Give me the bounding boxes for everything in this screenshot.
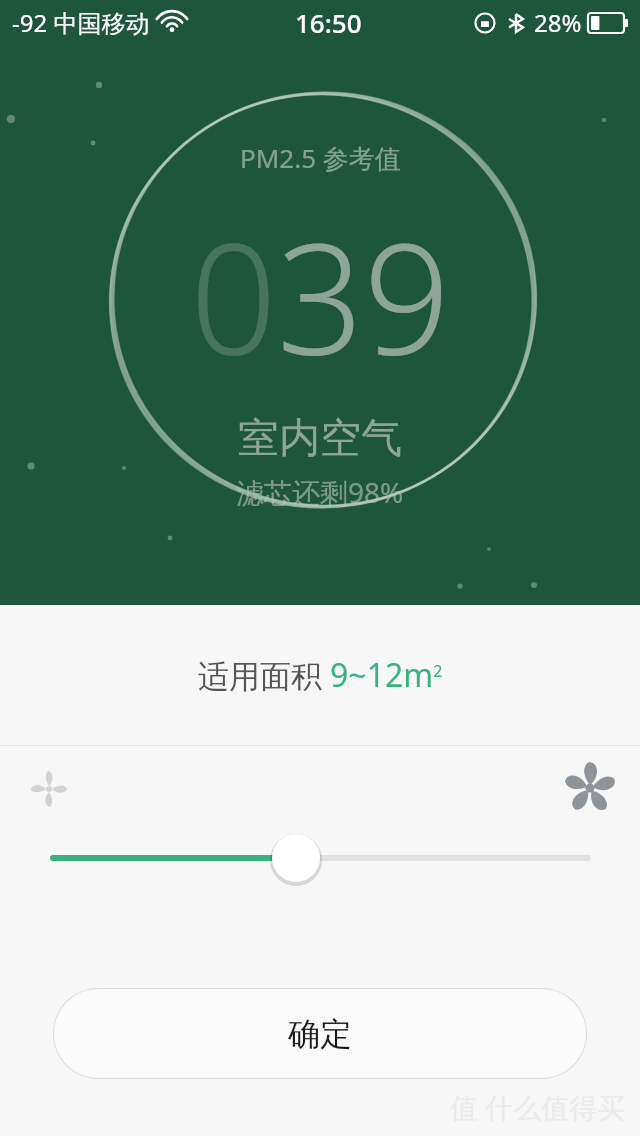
staticText: 室内空气	[238, 413, 402, 465]
staticText: 确定	[288, 1014, 352, 1054]
button[interactable]: High fan speed	[560, 758, 620, 818]
staticText: 适用面积 9~12m2	[198, 653, 443, 697]
button[interactable]: 适用面积 9~12m2	[0, 605, 640, 745]
staticText: PM2.5 参考值	[240, 140, 401, 176]
staticText: 28%	[534, 6, 582, 39]
staticText: 16:50	[295, 5, 362, 40]
button[interactable]	[0, 824, 640, 896]
staticText: 039	[190, 192, 451, 399]
button[interactable]: 确定	[53, 988, 587, 1079]
staticText: 滤芯还剩98%	[236, 473, 404, 511]
button[interactable]: Low fan speed	[22, 762, 76, 816]
staticText: -92 中国移动	[12, 6, 150, 39]
staticText: 值 什么值得买	[450, 1088, 626, 1126]
